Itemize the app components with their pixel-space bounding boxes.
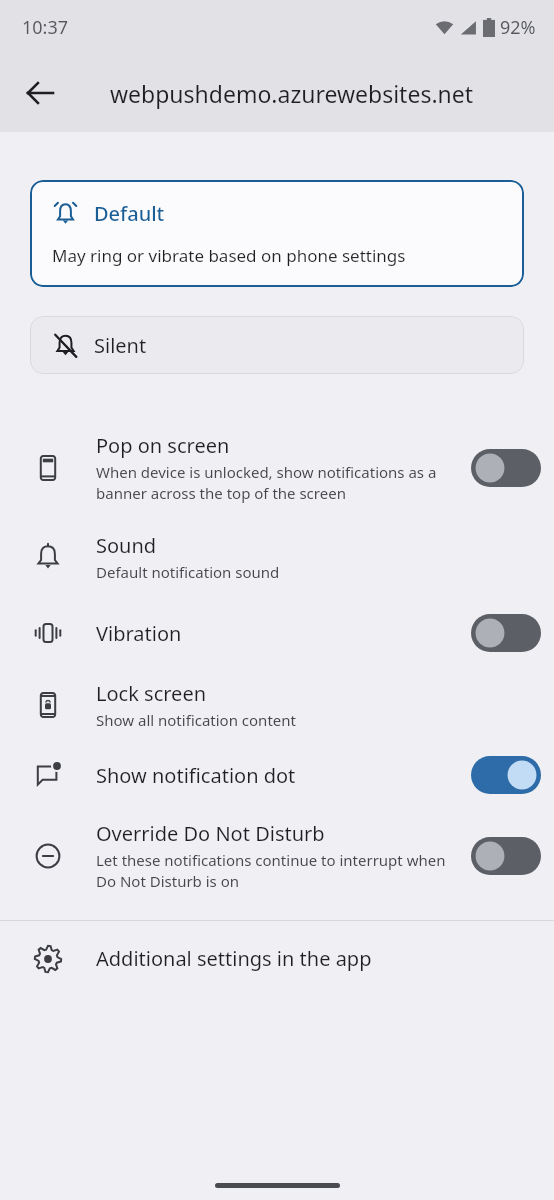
button[interactable]: Lock screen [0,680,554,730]
button[interactable]: Back [14,67,66,119]
button[interactable]: Additional settings in the app [0,921,554,996]
button[interactable]: Toggle Override Do Not Disturb [471,837,541,875]
button[interactable]: Toggle Show notification dot [471,756,541,794]
button[interactable]: Silent [30,316,524,374]
button[interactable]: Override Do Not Disturb [0,820,554,892]
staticText: Default [94,200,165,227]
staticText: Show all notification content [96,710,296,730]
button[interactable]: Toggle Pop on screen [471,449,541,487]
staticText: Let these notifications continue to inte… [96,850,446,892]
button[interactable]: Vibration [0,614,554,652]
button[interactable]: Pop on screen [0,432,554,504]
button[interactable]: Sound [0,532,554,582]
staticText: webpushdemo.azurewebsites.net [110,78,474,109]
staticText: Vibration [96,620,182,647]
staticText: Default notification sound [96,562,280,582]
button[interactable]: Toggle Vibration [471,614,541,652]
staticText: Sound [96,532,157,559]
staticText: 92% [500,15,536,40]
staticText: When device is unlocked, show notificati… [96,462,446,504]
staticText: Pop on screen [96,432,230,459]
staticText: Additional settings in the app [96,945,372,972]
button[interactable]: Default [30,180,524,287]
staticText: May ring or vibrate based on phone setti… [52,244,406,267]
staticText: 10:37 [22,15,69,40]
staticText: Lock screen [96,680,207,707]
staticText: Override Do Not Disturb [96,820,325,847]
button[interactable]: Show notification dot [0,756,554,794]
staticText: Silent [94,332,147,359]
staticText: Show notification dot [96,762,296,789]
